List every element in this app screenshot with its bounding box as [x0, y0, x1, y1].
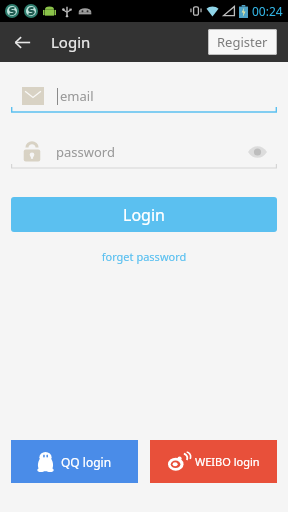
staticText: password [56, 143, 115, 161]
button[interactable]: email [11, 78, 277, 113]
button[interactable]: QQ login [11, 440, 138, 483]
staticText: QQ login [61, 454, 112, 470]
staticText: email [60, 87, 94, 105]
button[interactable]: Back [8, 28, 36, 56]
button[interactable]: Login [11, 197, 277, 232]
staticText: 00:24 [252, 3, 283, 19]
staticText: WEIBO login [195, 454, 260, 469]
button[interactable]: Register [208, 29, 277, 55]
button[interactable]: Show password [244, 139, 270, 165]
staticText: Register [217, 33, 268, 51]
staticText: Login [123, 204, 165, 226]
button[interactable]: password [11, 134, 277, 169]
staticText: forget password [0, 249, 288, 264]
button[interactable]: WEIBO login [150, 440, 277, 483]
staticText: Login [51, 32, 91, 52]
